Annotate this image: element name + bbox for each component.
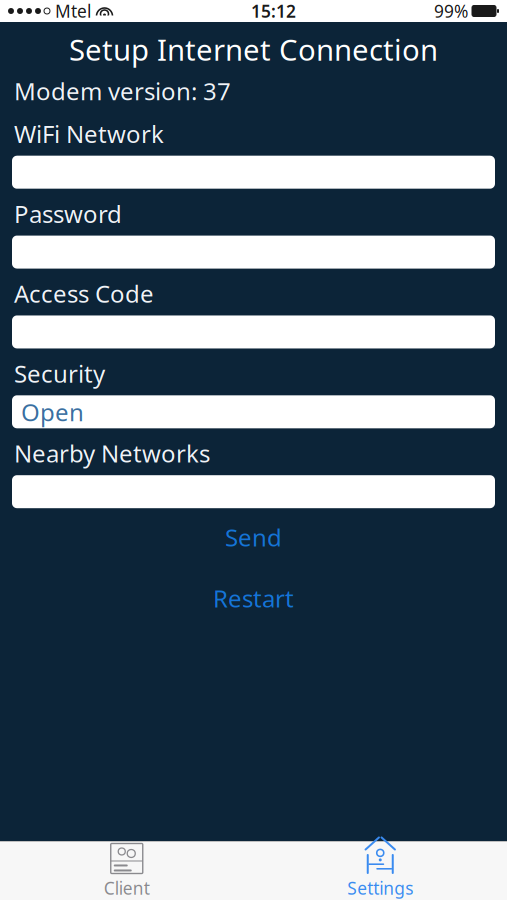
staticText: Password [14, 198, 122, 230]
staticText: Mtel [55, 0, 91, 22]
staticText: Client [104, 876, 150, 899]
staticText: Security [14, 357, 105, 389]
staticText: Access Code [14, 278, 154, 309]
staticText: Restart [213, 582, 294, 614]
staticText: Settings [347, 876, 413, 899]
button[interactable]: Settings [320, 842, 440, 900]
staticText: 15:12 [251, 0, 296, 22]
staticText: Nearby Networks [14, 437, 210, 469]
staticText: WiFi Network [14, 118, 164, 150]
button[interactable]: Client [67, 842, 187, 900]
staticText: Modem version: 37 [14, 75, 231, 107]
staticText: Setup Internet Connection [69, 30, 438, 69]
button[interactable]: Send [0, 520, 507, 554]
staticText: 99% [434, 0, 468, 22]
staticText: Open [21, 396, 84, 428]
staticText: Send [225, 521, 282, 553]
button[interactable]: Restart [0, 581, 507, 615]
